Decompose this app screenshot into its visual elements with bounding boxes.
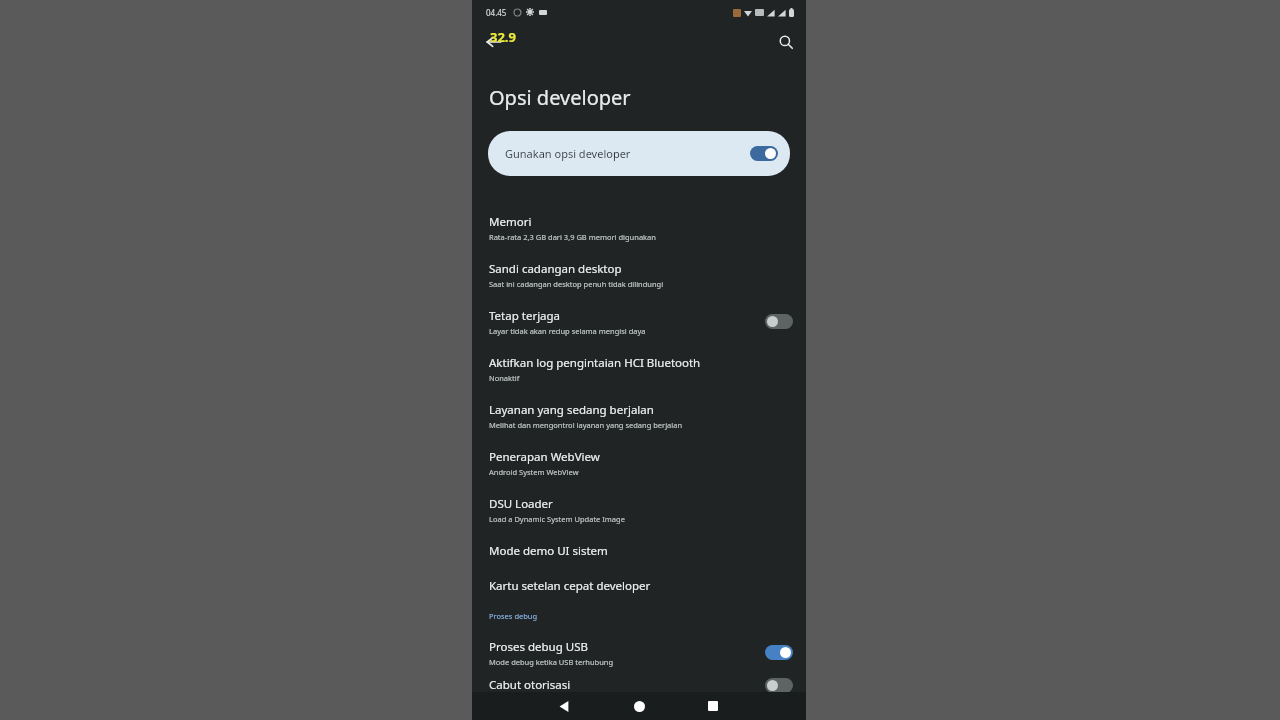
- staticText: 32.9: [490, 28, 516, 46]
- staticText: Proses debug: [489, 611, 538, 621]
- staticText: Melihat dan mengontrol layanan yang seda…: [489, 420, 683, 430]
- staticText: Proses debug USB: [489, 639, 588, 655]
- button[interactable]: Tetap terjaga: [472, 298, 806, 345]
- staticText: Sandi cadangan desktop: [489, 261, 622, 277]
- staticText: Memori: [489, 214, 532, 230]
- staticText: Layar tidak akan redup selama mengisi da…: [489, 326, 646, 336]
- button[interactable]: Kartu setelan cepat developer: [472, 568, 806, 603]
- button[interactable]: Kembali: [553, 695, 575, 717]
- staticText: Aktifkan log pengintaian HCI Bluetooth: [489, 355, 701, 371]
- staticText: Mode debug ketika USB terhubung: [489, 657, 614, 667]
- staticText: Load a Dynamic System Update Image: [489, 514, 625, 524]
- button[interactable]: Proses debug USB: [472, 629, 806, 676]
- button[interactable]: Telusuri: [772, 28, 800, 56]
- staticText: Saat ini cadangan desktop penuh tidak di…: [489, 279, 664, 289]
- button[interactable]: Memori: [472, 204, 806, 251]
- button[interactable]: DSU Loader: [472, 486, 806, 533]
- staticText: Nonaktif: [489, 373, 520, 383]
- staticText: Tetap terjaga: [489, 308, 561, 324]
- button[interactable]: Beranda: [628, 695, 650, 717]
- staticText: Opsi developer: [489, 84, 631, 111]
- staticText: DSU Loader: [489, 496, 553, 512]
- staticText: Kartu setelan cepat developer: [489, 578, 651, 594]
- button[interactable]: Cabut otorisasi: [472, 676, 806, 694]
- button[interactable]: Aktifkan log pengintaian HCI Bluetooth: [472, 345, 806, 392]
- staticText: Cabut otorisasi: [489, 677, 571, 693]
- button[interactable]: Gunakan opsi developer: [488, 131, 790, 176]
- staticText: Mode demo UI sistem: [489, 543, 608, 559]
- staticText: Penerapan WebView: [489, 449, 600, 465]
- staticText: Android System WebView: [489, 467, 579, 477]
- button[interactable]: Penerapan WebView: [472, 439, 806, 486]
- staticText: 04.45: [486, 7, 507, 18]
- button[interactable]: Aplikasi terbaru: [702, 695, 724, 717]
- staticText: Layanan yang sedang berjalan: [489, 402, 654, 418]
- button[interactable]: Layanan yang sedang berjalan: [472, 392, 806, 439]
- staticText: Gunakan opsi developer: [505, 146, 750, 161]
- button[interactable]: Sandi cadangan desktop: [472, 251, 806, 298]
- button[interactable]: Kembali: [480, 28, 508, 56]
- staticText: Rata-rata 2,3 GB dari 3,9 GB memori digu…: [489, 232, 656, 242]
- button[interactable]: Mode demo UI sistem: [472, 533, 806, 568]
